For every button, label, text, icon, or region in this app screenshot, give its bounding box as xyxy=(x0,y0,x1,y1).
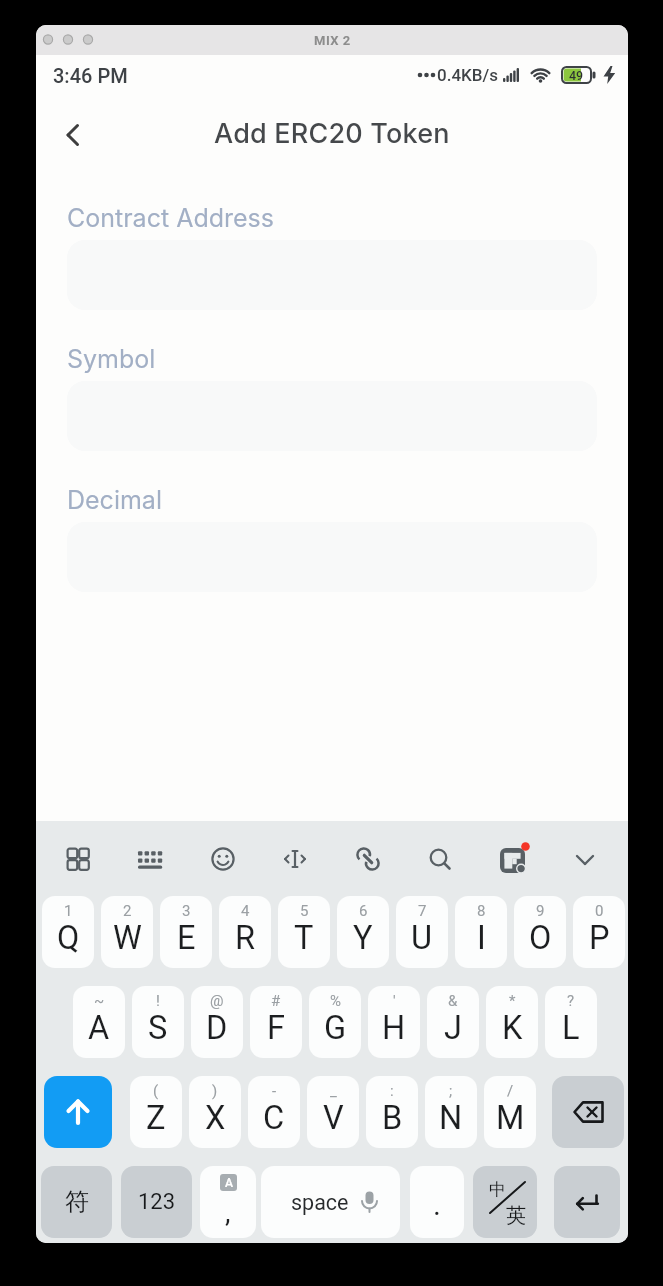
staticText: I xyxy=(477,919,486,957)
staticText: X xyxy=(205,1099,226,1137)
staticText: @ xyxy=(210,992,224,1010)
button[interactable]: 9 xyxy=(514,896,566,968)
button[interactable]: 中 xyxy=(473,1166,537,1238)
staticText: S xyxy=(148,1009,168,1047)
button[interactable]: # xyxy=(250,986,302,1058)
staticText: 中 xyxy=(489,1179,506,1200)
button[interactable] xyxy=(63,844,93,874)
staticText: J xyxy=(444,1009,462,1047)
staticText: H xyxy=(382,1009,406,1047)
staticText: U xyxy=(411,919,433,957)
staticText: & xyxy=(448,992,458,1010)
staticText: ; xyxy=(449,1082,453,1100)
staticText: ! xyxy=(156,992,160,1010)
staticText: 49 xyxy=(569,68,584,83)
button[interactable]: % xyxy=(309,986,361,1058)
button[interactable] xyxy=(353,844,383,874)
button[interactable] xyxy=(570,844,600,874)
staticText: A xyxy=(88,1009,110,1047)
button[interactable]: 123 xyxy=(121,1166,192,1238)
staticText: % xyxy=(330,992,341,1010)
staticText: ? xyxy=(567,992,575,1010)
button[interactable]: ~ xyxy=(73,986,125,1058)
staticText: ) xyxy=(212,1082,218,1100)
button[interactable]: / xyxy=(484,1076,536,1148)
staticText: 3:46 PM xyxy=(53,64,128,87)
button[interactable]: 7 xyxy=(396,896,448,968)
button[interactable]: ) xyxy=(189,1076,241,1148)
button[interactable]: ; xyxy=(425,1076,477,1148)
staticText: E xyxy=(177,919,196,957)
staticText: MIX 2 xyxy=(314,33,351,48)
staticText: P xyxy=(589,919,610,957)
button[interactable] xyxy=(554,1166,620,1238)
staticText: Decimal xyxy=(67,485,162,515)
button[interactable] xyxy=(552,1076,624,1148)
button[interactable]: * xyxy=(486,986,538,1058)
staticText: 6 xyxy=(359,902,368,920)
staticText: K xyxy=(502,1009,523,1047)
button[interactable]: 1 xyxy=(42,896,94,968)
staticText: 5 xyxy=(300,902,309,920)
staticText: Y xyxy=(353,919,373,957)
button[interactable]: 符 xyxy=(41,1166,112,1238)
staticText: W xyxy=(113,919,142,957)
staticText: G xyxy=(324,1009,347,1047)
button[interactable]: 5 xyxy=(278,896,330,968)
staticText: Contract Address xyxy=(67,203,274,233)
button[interactable]: @ xyxy=(191,986,243,1058)
staticText: T xyxy=(294,919,314,957)
staticText: 0.4KB/s xyxy=(437,65,499,85)
staticText: A xyxy=(225,1176,233,1190)
staticText: V xyxy=(323,1099,344,1137)
staticText: : xyxy=(390,1082,394,1100)
staticText: # xyxy=(271,992,281,1010)
staticText: - xyxy=(272,1082,277,1100)
button[interactable] xyxy=(208,844,238,874)
button[interactable]: 4 xyxy=(219,896,271,968)
staticText: / xyxy=(507,1082,514,1100)
button[interactable]: & xyxy=(427,986,479,1058)
staticText: * xyxy=(509,992,516,1010)
button[interactable] xyxy=(280,844,310,874)
button[interactable]: 2 xyxy=(101,896,153,968)
staticText: Q xyxy=(57,919,80,957)
staticText: 8 xyxy=(477,902,486,920)
button[interactable] xyxy=(498,844,528,874)
button[interactable] xyxy=(135,844,165,874)
staticText: space xyxy=(291,1190,349,1215)
button[interactable]: ? xyxy=(545,986,597,1058)
staticText: 3 xyxy=(182,902,191,920)
staticText: ( xyxy=(153,1082,159,1100)
button[interactable] xyxy=(425,844,455,874)
button[interactable]: - xyxy=(248,1076,300,1148)
staticText: Add ERC20 Token xyxy=(214,117,450,150)
button[interactable]: : xyxy=(366,1076,418,1148)
button[interactable]: ' xyxy=(368,986,420,1058)
staticText: 123 xyxy=(138,1189,176,1215)
button[interactable]: 3 xyxy=(160,896,212,968)
staticText: Z xyxy=(146,1099,166,1137)
staticText: ' xyxy=(393,992,396,1010)
button[interactable] xyxy=(54,117,90,153)
staticText: N xyxy=(439,1099,463,1137)
staticText: C xyxy=(263,1099,285,1137)
button[interactable]: ( xyxy=(130,1076,182,1148)
staticText: _ xyxy=(330,1082,337,1100)
button[interactable]: . xyxy=(410,1166,464,1238)
button[interactable]: A xyxy=(200,1166,256,1238)
staticText: R xyxy=(235,919,256,957)
button[interactable]: space xyxy=(261,1166,400,1238)
staticText: M xyxy=(496,1099,525,1137)
staticText: F xyxy=(267,1009,285,1047)
staticText: 4 xyxy=(241,902,250,920)
button[interactable]: _ xyxy=(307,1076,359,1148)
button[interactable]: 0 xyxy=(573,896,625,968)
button[interactable]: 8 xyxy=(455,896,507,968)
button[interactable]: 6 xyxy=(337,896,389,968)
button[interactable]: ! xyxy=(132,986,184,1058)
button[interactable] xyxy=(44,1076,112,1148)
